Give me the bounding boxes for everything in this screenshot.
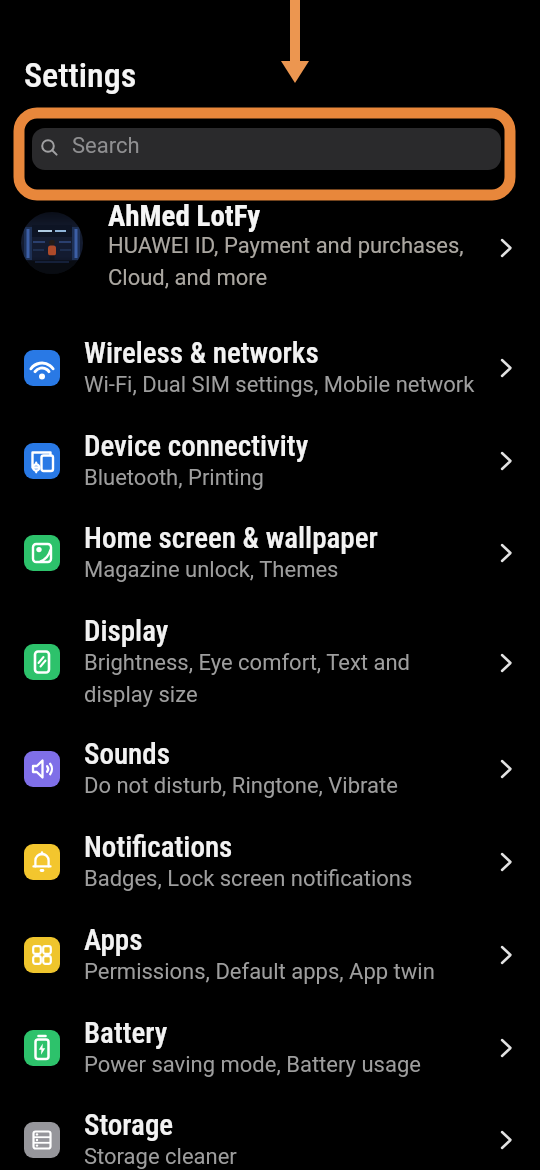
button[interactable]: Battery [0, 1010, 540, 1103]
staticText: Bluetooth, Printing [84, 465, 264, 491]
staticText: Storage [84, 1108, 174, 1142]
button[interactable]: Device connectivity [0, 423, 540, 516]
button[interactable]: Display [0, 608, 540, 731]
staticText: Apps [84, 923, 143, 957]
staticText: Storage cleaner [84, 1144, 237, 1170]
staticText: Magazine unlock, Themes [84, 557, 339, 583]
button[interactable]: Home screen & wallpaper [0, 515, 540, 608]
staticText: Do not disturb, Ringtone, Vibrate [84, 773, 398, 799]
staticText: HUAWEI ID, Payment and purchases, Cloud,… [108, 233, 464, 291]
staticText: Battery [84, 1016, 168, 1050]
staticText: Wi-Fi, Dual SIM settings, Mobile network [84, 372, 475, 398]
staticText: Permissions, Default apps, App twin [84, 959, 435, 985]
staticText: Display [84, 614, 169, 648]
button[interactable]: Wireless & networks [0, 330, 540, 423]
staticText: AhMed LotFy [108, 199, 261, 233]
button[interactable]: Search [32, 128, 501, 170]
staticText: Badges, Lock screen notifications [84, 866, 413, 892]
staticText: Home screen & wallpaper [84, 521, 378, 555]
staticText: Settings [24, 55, 137, 95]
button[interactable]: Notifications [0, 824, 540, 917]
staticText: Brightness, Eye comfort, Text and displa… [84, 650, 411, 708]
staticText: Device connectivity [84, 429, 309, 463]
staticText: Search [72, 133, 140, 159]
button[interactable]: Apps [0, 917, 540, 1010]
button[interactable]: Sounds [0, 731, 540, 824]
staticText: Sounds [84, 737, 170, 771]
staticText: Wireless & networks [84, 336, 319, 370]
button[interactable]: Storage [0, 1102, 540, 1170]
staticText: Power saving mode, Battery usage [84, 1052, 421, 1078]
staticText: Notifications [84, 830, 233, 864]
button[interactable]: AhMed LotFy [0, 198, 540, 298]
